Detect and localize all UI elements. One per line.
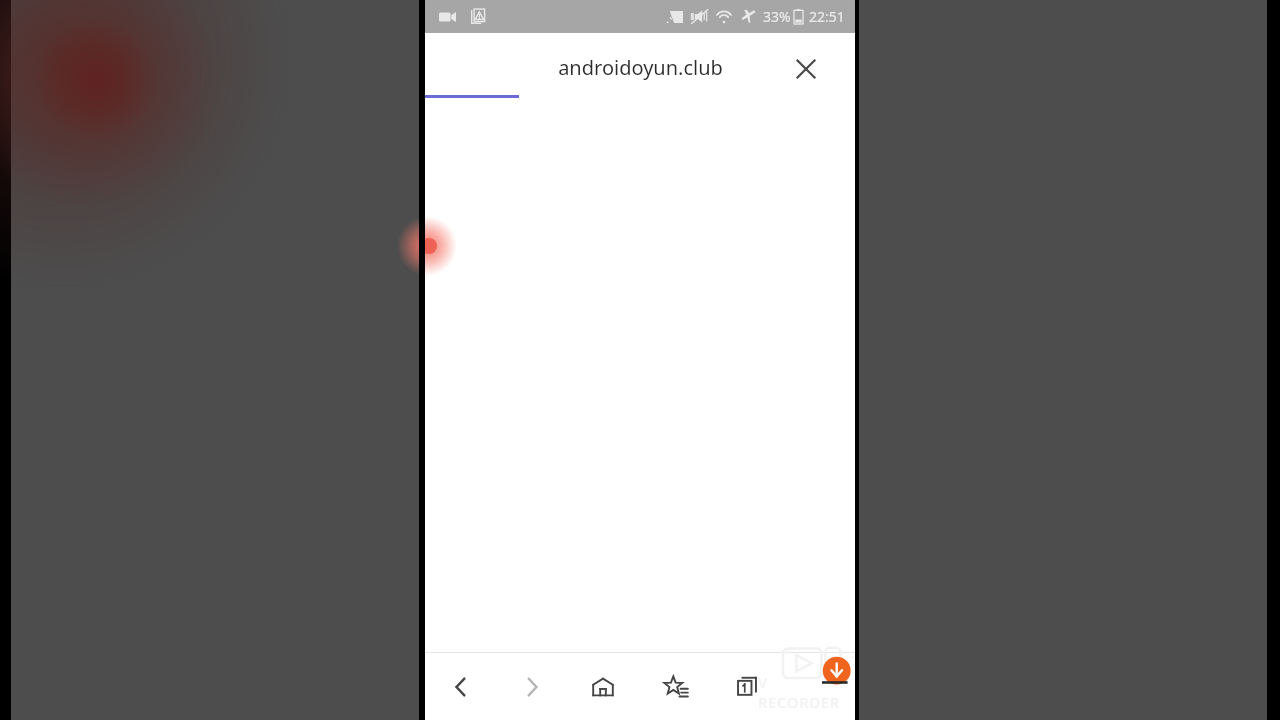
button[interactable]: Back [425,653,496,720]
staticText: androidoyun.club [558,54,723,81]
staticText: V RECORDER [758,672,854,712]
button[interactable]: Close [787,50,825,88]
button[interactable]: Tabs [711,653,783,720]
button[interactable]: Menu [783,653,855,720]
button[interactable]: Home [567,653,639,720]
button[interactable]: Forward [496,653,567,720]
button[interactable]: Bookmarks [639,653,711,720]
staticText: 22:51 [809,7,845,26]
staticText: 33% [763,7,791,26]
